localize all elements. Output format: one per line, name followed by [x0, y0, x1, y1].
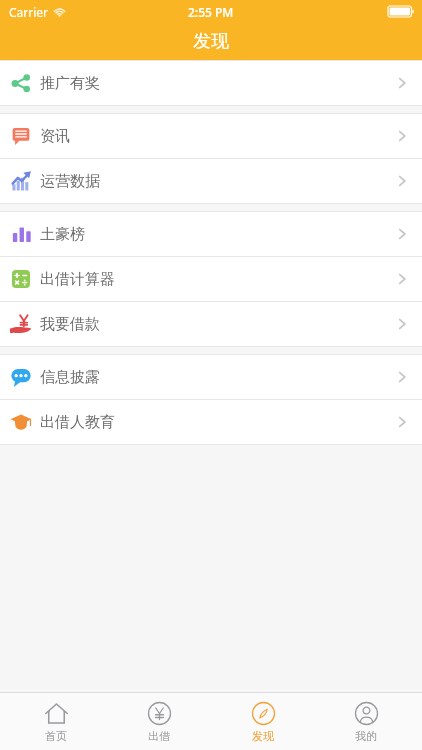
staticText: 资讯	[40, 127, 70, 146]
other: 出借	[147, 701, 172, 726]
button[interactable]: 资讯	[0, 114, 422, 158]
button[interactable]: 出借计算器	[0, 257, 422, 301]
staticText: 运营数据	[40, 172, 100, 191]
staticText: 首页	[45, 729, 67, 743]
staticText: 发现	[193, 30, 229, 53]
staticText: 2:55 PM	[188, 4, 234, 20]
staticText: 出借计算器	[40, 270, 115, 289]
staticText: 我要借款	[40, 315, 100, 334]
staticText: 发现	[252, 729, 274, 743]
staticText: Carrier	[9, 4, 49, 20]
staticText: 推广有奖	[40, 74, 100, 93]
button[interactable]: 出借人教育	[0, 400, 422, 444]
staticText: 我的	[355, 729, 377, 743]
button[interactable]: 出借	[112, 693, 206, 750]
button[interactable]: 信息披露	[0, 355, 422, 399]
other: 我的	[354, 701, 379, 726]
button[interactable]: 首页	[9, 693, 103, 750]
button[interactable]: 发现	[216, 693, 310, 750]
staticText: 出借人教育	[40, 413, 115, 432]
button[interactable]: 运营数据	[0, 159, 422, 203]
button[interactable]: 推广有奖	[0, 61, 422, 105]
staticText: 信息披露	[40, 368, 100, 387]
button[interactable]: 我要借款	[0, 302, 422, 346]
staticText: 出借	[148, 729, 170, 743]
button[interactable]: 我的	[319, 693, 413, 750]
staticText: 土豪榜	[40, 225, 85, 244]
button[interactable]: 土豪榜	[0, 212, 422, 256]
other: 发现	[251, 701, 276, 726]
other: 首页	[44, 701, 69, 726]
